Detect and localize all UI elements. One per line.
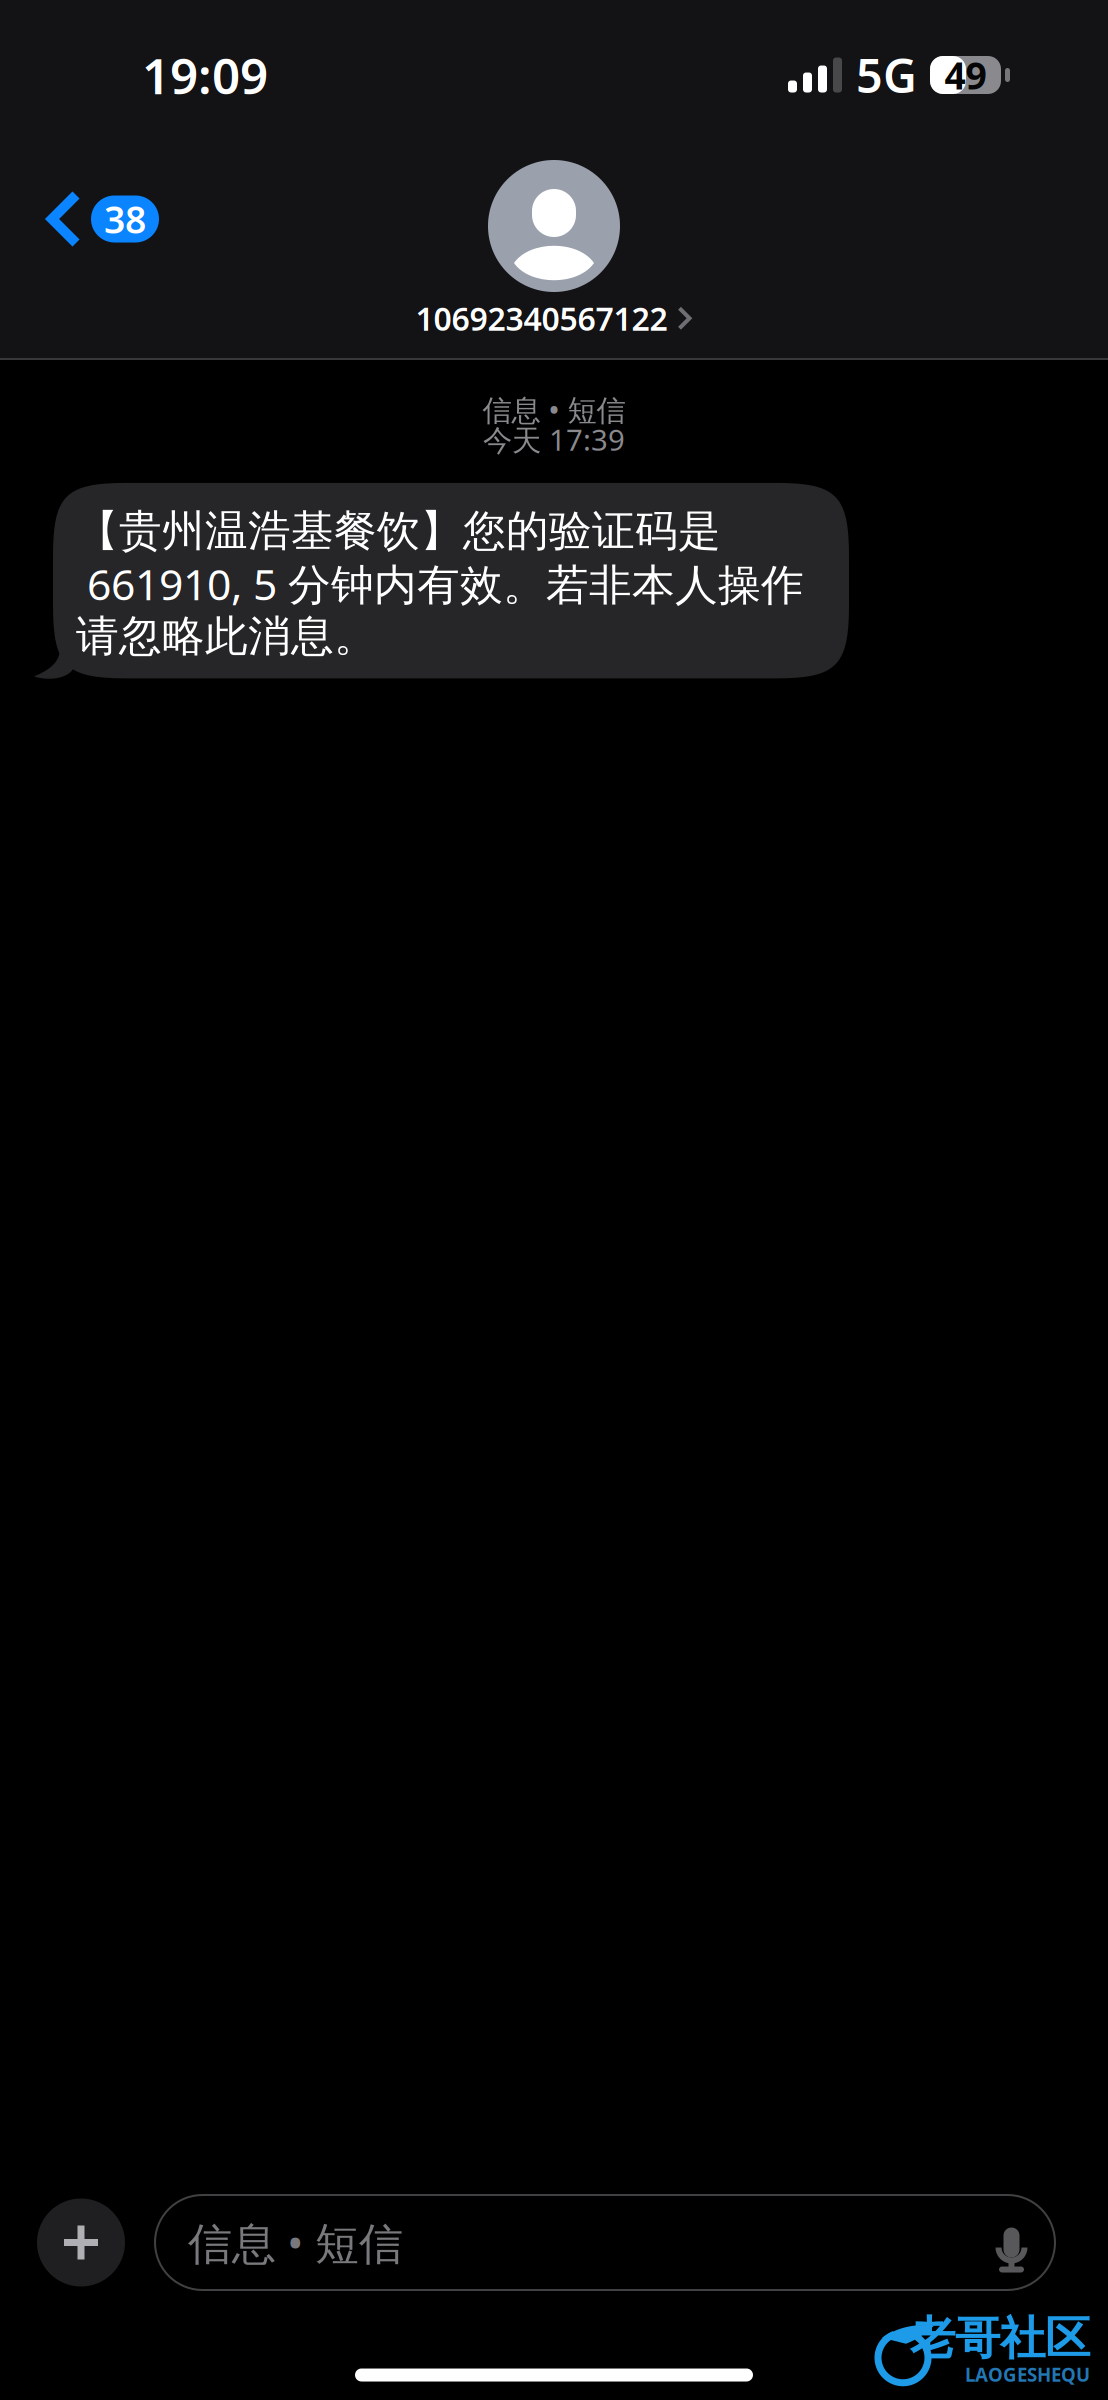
button[interactable]: 10692340567122, contact details xyxy=(395,150,712,349)
staticText: 661910, 5 分钟内有效。若非本人操作 xyxy=(76,555,804,612)
button[interactable]: Back, 38 unread conversations xyxy=(30,173,175,265)
staticText: 5G xyxy=(856,44,917,106)
staticText: 【贵州温浩基餐饮】您的验证码是 xyxy=(76,505,721,557)
staticText: 今天 17:39 xyxy=(483,420,625,459)
button[interactable]: Add attachment xyxy=(37,2198,125,2286)
staticText: 19:09 xyxy=(142,42,268,108)
staticText: 49 xyxy=(944,50,986,100)
staticText: 信息 • 短信 xyxy=(482,390,625,429)
staticText: 38 xyxy=(104,194,146,244)
button[interactable]: Message field, 信息 短信 xyxy=(155,2195,1055,2290)
staticText: 老哥社区 xyxy=(910,2310,1090,2366)
staticText: 请忽略此消息。 xyxy=(76,610,377,662)
staticText: LAOGESHEQU xyxy=(965,2362,1090,2387)
staticText: 信息 • 短信 xyxy=(188,2213,403,2272)
staticText: 10692340567122 xyxy=(415,297,667,339)
